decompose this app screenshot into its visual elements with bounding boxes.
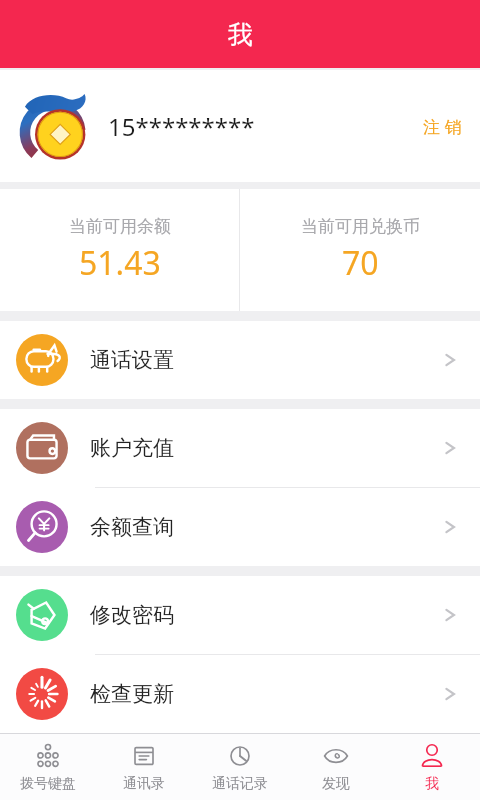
staticText: 通话设置 — [90, 347, 174, 373]
staticText: 账户充值 — [90, 435, 174, 461]
staticText: 15********* — [108, 110, 255, 143]
button[interactable]: 通讯录 — [96, 734, 192, 800]
staticText: 修改密码 — [90, 602, 174, 628]
staticText: 我 — [228, 19, 253, 50]
staticText: 拨号键盘 — [20, 775, 76, 793]
button[interactable]: 我 — [384, 734, 480, 800]
button[interactable]: 发现 — [288, 734, 384, 800]
staticText: 发现 — [322, 775, 350, 793]
button[interactable]: 检查更新 — [0, 655, 480, 733]
button[interactable]: 注 销 — [419, 111, 466, 142]
button[interactable]: 通话设置 — [0, 321, 480, 399]
button[interactable]: 拨号键盘 — [0, 734, 96, 800]
staticText: 51.43 — [79, 241, 161, 285]
button[interactable]: 15********* — [0, 70, 480, 182]
button[interactable]: 修改密码 — [0, 576, 480, 654]
staticText: 70 — [342, 241, 379, 285]
button[interactable]: 当前可用余额 — [0, 189, 239, 311]
staticText: 当前可用余额 — [69, 216, 171, 237]
button[interactable]: 通话记录 — [192, 734, 288, 800]
staticText: 我 — [425, 775, 439, 793]
staticText: 注 销 — [423, 115, 462, 138]
staticText: 余额查询 — [90, 514, 174, 540]
button[interactable]: 余额查询 — [0, 488, 480, 566]
staticText: 检查更新 — [90, 681, 174, 707]
staticText: 当前可用兑换币 — [301, 216, 420, 237]
button[interactable]: 当前可用兑换币 — [240, 189, 480, 311]
button[interactable]: 账户充值 — [0, 409, 480, 487]
staticText: 通讯录 — [123, 775, 165, 793]
staticText: 通话记录 — [212, 775, 268, 793]
